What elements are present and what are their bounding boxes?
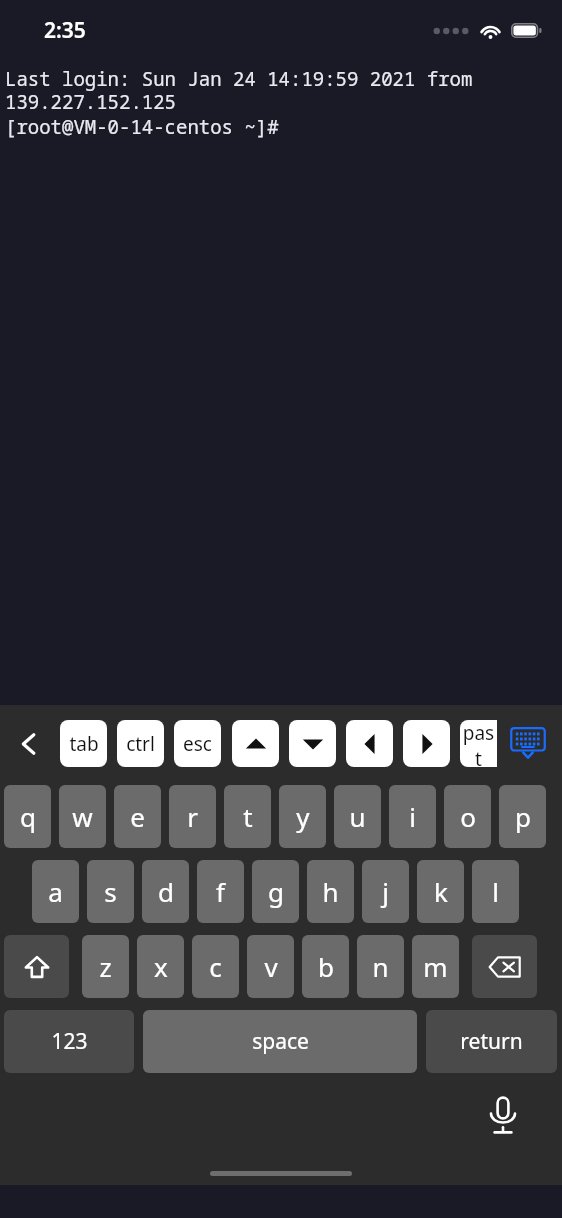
staticText: e	[130, 799, 145, 834]
staticText: tab	[69, 731, 99, 757]
staticText: f	[216, 874, 225, 909]
staticText: m	[423, 949, 448, 984]
button[interactable]: return	[426, 1010, 557, 1073]
staticText: g	[268, 874, 284, 909]
staticText: 2:35	[44, 16, 86, 45]
staticText: esc	[183, 731, 212, 757]
button[interactable]: l	[472, 860, 519, 923]
button[interactable]: esc	[174, 720, 221, 767]
button[interactable]: h	[307, 860, 354, 923]
button[interactable]: Back	[5, 720, 53, 768]
staticText: past	[460, 720, 497, 767]
staticText: 123	[51, 1027, 88, 1056]
button[interactable]: 123	[4, 1010, 134, 1073]
button[interactable]: c	[192, 935, 239, 998]
staticText: x	[154, 949, 168, 984]
button[interactable]: o	[444, 785, 491, 848]
staticText: t	[243, 799, 253, 834]
staticText: h	[322, 874, 339, 909]
staticText: y	[296, 799, 310, 834]
button[interactable]: y	[279, 785, 326, 848]
staticText: v	[264, 949, 278, 984]
staticText: l	[492, 874, 499, 909]
button[interactable]: i	[389, 785, 436, 848]
button[interactable]: Down	[289, 720, 336, 767]
staticText: b	[318, 949, 334, 984]
button[interactable]: Right	[403, 720, 450, 767]
staticText: d	[158, 874, 174, 909]
button[interactable]: b	[302, 935, 349, 998]
staticText: k	[434, 874, 448, 909]
button[interactable]: n	[357, 935, 404, 998]
button[interactable]: Dictate	[478, 1091, 528, 1141]
button[interactable]: tab	[60, 720, 107, 767]
staticText: s	[104, 874, 117, 909]
staticText: j	[382, 874, 389, 909]
button[interactable]: ctrl	[117, 720, 164, 767]
staticText: [root@VM-0-14-centos ~]#	[5, 114, 279, 140]
button[interactable]: f	[197, 860, 244, 923]
button[interactable]: p	[499, 785, 546, 848]
button[interactable]: z	[82, 935, 129, 998]
button[interactable]: d	[142, 860, 189, 923]
staticText: return	[460, 1027, 523, 1056]
staticText: ctrl	[126, 731, 155, 757]
button[interactable]: Hide keyboard	[504, 720, 552, 768]
staticText: Last login: Sun Jan 24 14:19:59 2021 fro…	[5, 66, 562, 114]
staticText: q	[20, 799, 36, 834]
staticText: i	[409, 799, 416, 834]
staticText: z	[99, 949, 112, 984]
button[interactable]: k	[417, 860, 464, 923]
button[interactable]: g	[252, 860, 299, 923]
button[interactable]: e	[114, 785, 161, 848]
button[interactable]: Left	[346, 720, 393, 767]
button[interactable]: m	[412, 935, 459, 998]
button[interactable]: u	[334, 785, 381, 848]
button[interactable]: x	[137, 935, 184, 998]
staticText: space	[252, 1027, 309, 1056]
button[interactable]: t	[224, 785, 271, 848]
staticText: u	[349, 799, 366, 834]
staticText: p	[515, 799, 531, 834]
button[interactable]: r	[169, 785, 216, 848]
button[interactable]: Backspace	[472, 935, 537, 998]
button[interactable]: j	[362, 860, 409, 923]
staticText: a	[48, 874, 63, 909]
button[interactable]: Last login: Sun Jan 24 14:19:59 2021 fro…	[0, 60, 562, 705]
staticText: o	[460, 799, 476, 834]
staticText: c	[209, 949, 222, 984]
button[interactable]: q	[4, 785, 51, 848]
button[interactable]: Shift	[4, 935, 69, 998]
button[interactable]: w	[59, 785, 106, 848]
button[interactable]: past	[460, 720, 497, 767]
button[interactable]: a	[32, 860, 79, 923]
staticText: n	[372, 949, 389, 984]
button[interactable]: s	[87, 860, 134, 923]
staticText: w	[72, 799, 93, 834]
button[interactable]: space	[143, 1010, 417, 1073]
button[interactable]: Up	[232, 720, 279, 767]
button[interactable]: v	[247, 935, 294, 998]
staticText: r	[187, 799, 198, 834]
